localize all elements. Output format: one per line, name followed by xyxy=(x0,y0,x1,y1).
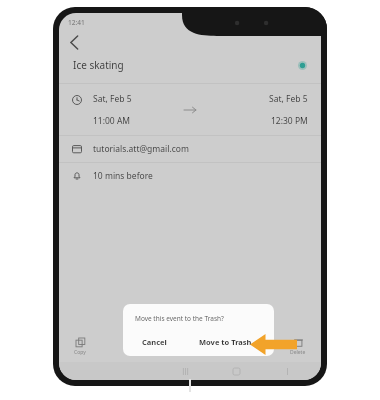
staticText: Move this event to the Trash? xyxy=(135,314,224,323)
staticText: Sat, Feb 5 xyxy=(269,93,308,105)
button[interactable]: Sat, Feb 5 xyxy=(59,84,321,135)
staticText: Delete xyxy=(290,349,306,356)
button[interactable]: Delete xyxy=(290,338,306,356)
button[interactable]: Move to Trash xyxy=(190,333,261,351)
button[interactable]: tutorials.att@gmail.com xyxy=(59,136,321,162)
staticText: Sat, Feb 5 xyxy=(93,93,132,105)
staticText: tutorials.att@gmail.com xyxy=(93,143,189,155)
button[interactable]: Back xyxy=(59,31,321,54)
button[interactable]: Home xyxy=(230,365,242,377)
button[interactable]: 10 mins before xyxy=(59,163,321,189)
staticText: 11:00 AM xyxy=(93,115,131,127)
staticText: 12:30 PM xyxy=(271,115,308,127)
staticText: Ice skating xyxy=(73,58,124,72)
button[interactable]: Copy xyxy=(74,338,86,356)
button[interactable]: Cancel xyxy=(133,333,176,351)
staticText: Cancel xyxy=(142,337,167,347)
staticText: 10 mins before xyxy=(93,170,153,182)
button[interactable]: Back xyxy=(281,365,293,377)
staticText: Copy xyxy=(74,349,86,356)
staticText: 12:41 xyxy=(68,18,85,27)
staticText: Move to Trash xyxy=(199,337,252,347)
button[interactable]: Recents xyxy=(179,365,191,377)
